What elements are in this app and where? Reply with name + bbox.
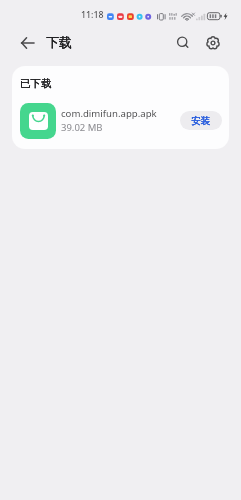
staticText: 已下载 xyxy=(20,77,52,90)
button[interactable]: 安装 xyxy=(180,111,222,130)
staticText: 安装 xyxy=(191,115,211,127)
staticText: 下载 xyxy=(46,34,72,50)
staticText: 下载 xyxy=(46,34,72,50)
staticText: 已下载 xyxy=(20,77,52,90)
staticText: com.dimifun.app.apk xyxy=(61,107,157,120)
staticText: 安装 xyxy=(191,115,211,127)
button[interactable]: Back xyxy=(16,31,40,55)
staticText: 下载 xyxy=(46,34,72,50)
staticText: 下载 xyxy=(46,34,72,50)
button[interactable]: Search xyxy=(171,31,195,55)
staticText: 安装 xyxy=(191,115,211,127)
staticText: 已下载 xyxy=(20,77,52,90)
staticText: 安装 xyxy=(191,115,211,127)
staticText: 11:18 xyxy=(81,9,104,21)
staticText: 已下载 xyxy=(20,77,52,90)
staticText: 39.02 MB xyxy=(61,121,103,134)
button[interactable]: Settings xyxy=(201,31,225,55)
